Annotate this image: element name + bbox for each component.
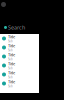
staticText: Sub bbox=[8, 66, 13, 70]
staticText: Sub bbox=[8, 84, 13, 88]
staticText: Title bbox=[8, 79, 15, 84]
staticText: Search bbox=[8, 24, 25, 31]
staticText: Title bbox=[8, 52, 15, 57]
staticText: Sub bbox=[8, 39, 13, 43]
staticText: Sub bbox=[8, 57, 13, 61]
staticText: Title bbox=[8, 61, 15, 66]
staticText: Sub bbox=[8, 48, 13, 52]
staticText: Title bbox=[8, 43, 15, 48]
staticText: Title bbox=[8, 70, 15, 75]
staticText: Sub bbox=[8, 75, 13, 79]
staticText: Title bbox=[8, 34, 15, 39]
